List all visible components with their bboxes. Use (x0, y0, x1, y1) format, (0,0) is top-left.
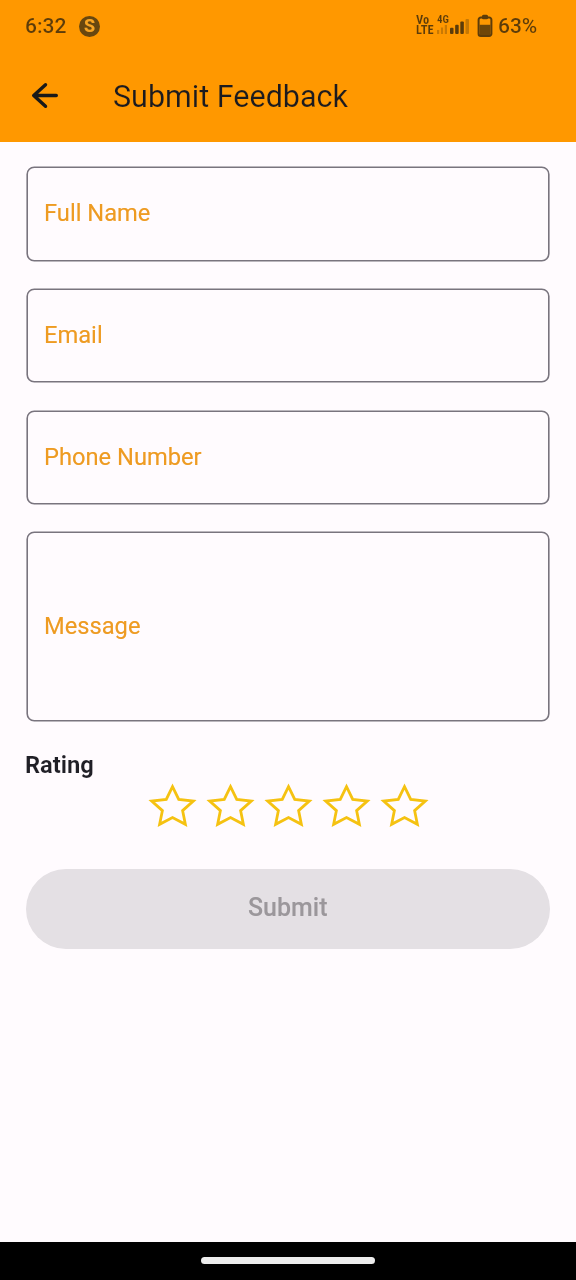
button[interactable]: Rate 3 star (265, 784, 312, 828)
button[interactable]: Submit (26, 869, 550, 949)
staticText: Submit (248, 893, 328, 922)
staticText: Vo (416, 12, 430, 27)
staticText: Submit Feedback (113, 79, 348, 115)
staticText: 4G (437, 13, 450, 26)
button[interactable]: Message (26, 531, 550, 722)
button[interactable]: Email (26, 288, 550, 383)
staticText: S (84, 16, 96, 36)
button[interactable]: Rate 4 star (323, 784, 370, 828)
staticText: 63% (498, 14, 538, 39)
staticText: LTE (416, 22, 434, 37)
staticText: Rating (25, 751, 94, 779)
button[interactable]: Back (19, 70, 70, 121)
staticText: 6:32 (25, 14, 67, 39)
button[interactable]: Rate 5 star (381, 784, 428, 828)
button[interactable]: Full Name (26, 166, 550, 262)
button[interactable]: Rate 2 star (207, 784, 254, 828)
staticText: Message (44, 612, 141, 640)
button[interactable]: Rate 1 star (149, 784, 196, 828)
staticText: Phone Number (44, 443, 202, 471)
staticText: Email (44, 321, 103, 349)
staticText: Full Name (44, 199, 151, 227)
button[interactable]: Phone Number (26, 410, 550, 505)
